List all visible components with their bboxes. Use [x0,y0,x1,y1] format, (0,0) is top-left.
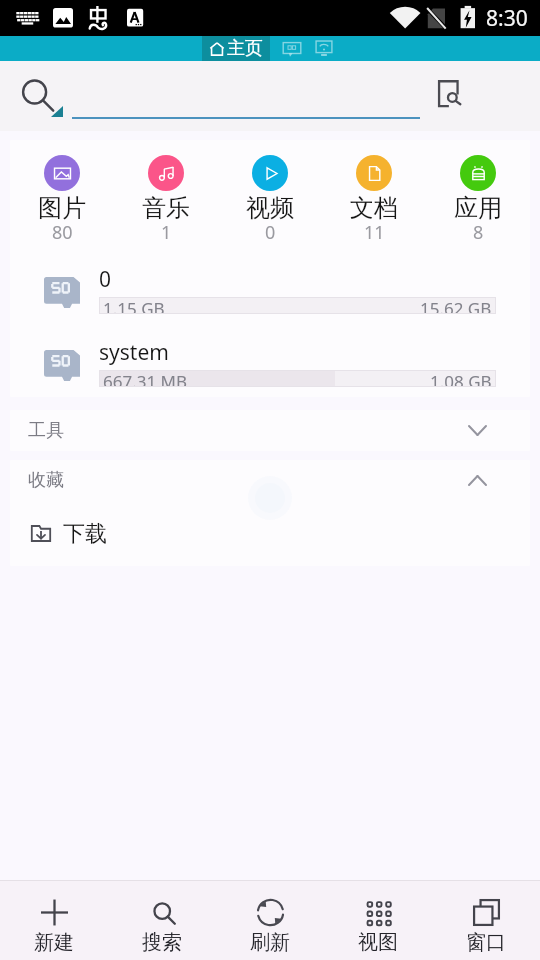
staticText: 刷新 [250,930,290,955]
button[interactable]: Search [15,74,55,114]
staticText: 11 [364,220,385,245]
button[interactable]: 视图 [324,881,432,960]
staticText: 1.08 GB [430,370,492,387]
staticText: 视图 [358,930,398,955]
staticText: 0 [265,220,276,245]
staticText: 80 [52,220,73,245]
staticText: 主页 [227,37,263,60]
button[interactable]: system [10,342,530,387]
staticText: 文档 [350,193,398,223]
staticText: system [99,338,169,367]
button[interactable]: Search in files [436,79,464,107]
button[interactable]: 下载 [10,501,530,566]
staticText: 工具 [28,419,64,442]
staticText: 下载 [63,520,107,548]
staticText: 视频 [246,193,294,223]
button[interactable]: 文档 [322,155,426,248]
staticText: 15.62 GB [420,297,492,314]
staticText: 收藏 [28,469,64,492]
button[interactable]: Remote computer [315,40,333,57]
button[interactable]: SD card [282,41,302,57]
button[interactable]: 收藏 [10,460,530,501]
button[interactable]: 工具 [10,410,530,451]
staticText: 8:30 [486,4,528,33]
button[interactable]: 0 [10,269,530,314]
button[interactable]: 新建 [0,881,108,960]
staticText: 图片 [38,193,86,223]
staticText: 8 [473,220,484,245]
button[interactable]: 音乐 [114,155,218,248]
staticText: 1.15 GB [103,297,165,314]
button[interactable]: 窗口 [432,881,540,960]
button[interactable]: 视频 [218,155,322,248]
staticText: 搜索 [142,930,182,955]
staticText: 1 [161,220,172,245]
button[interactable]: 图片 [10,155,114,248]
staticText: 应用 [454,193,502,223]
staticText: 音乐 [142,193,190,223]
button[interactable]: 搜索 [108,881,216,960]
staticText: 窗口 [466,930,506,955]
button[interactable]: 刷新 [216,881,324,960]
button[interactable]: 主页 [202,36,270,61]
button[interactable]: 应用 [426,155,530,248]
staticText: 新建 [34,930,74,955]
staticText: 667.31 MB [103,370,188,387]
staticText: 0 [99,265,112,294]
